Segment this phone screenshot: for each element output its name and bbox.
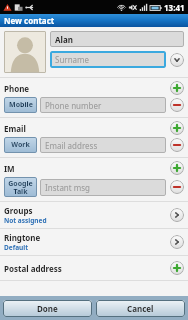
button[interactable]: Add contact photo	[4, 31, 46, 73]
staticText: Not assigned	[4, 216, 47, 225]
staticText: Mobile	[9, 100, 33, 110]
staticText: Surname	[55, 54, 90, 65]
staticText: Phone number	[45, 100, 102, 111]
staticText: Cancel	[127, 303, 154, 314]
button[interactable]: Add IM	[170, 161, 184, 175]
staticText: Instant msg	[45, 182, 91, 193]
button[interactable]: Groups	[170, 208, 184, 222]
button[interactable]: Add Email	[170, 121, 184, 135]
staticText: Alan	[55, 34, 73, 45]
button[interactable]: Ringtone	[0, 229, 188, 255]
button[interactable]: Done	[3, 300, 92, 317]
staticText: Ringtone	[4, 232, 41, 243]
staticText: Phone	[4, 83, 170, 94]
button[interactable]: Expand name fields	[170, 53, 184, 67]
button[interactable]: Remove IM	[170, 180, 184, 194]
button[interactable]: Remove Phone	[170, 98, 184, 112]
button[interactable]: Groups	[0, 202, 188, 228]
button[interactable]: Instant msg	[40, 179, 166, 196]
button[interactable]: Cancel	[96, 300, 185, 317]
staticText: Email address	[45, 140, 98, 151]
button[interactable]: Email address	[40, 137, 166, 153]
button[interactable]: Surname	[50, 51, 166, 68]
button[interactable]: Alan	[50, 31, 184, 47]
staticText: Default	[4, 243, 29, 252]
staticText: Done	[37, 303, 58, 314]
staticText: 13:41	[164, 2, 185, 13]
staticText: Work	[11, 140, 30, 150]
staticText: Email	[4, 123, 170, 134]
staticText: New contact	[4, 15, 55, 26]
button[interactable]: Remove Email	[170, 138, 184, 152]
button[interactable]: Work	[4, 137, 37, 153]
button[interactable]: Mobile	[4, 97, 37, 113]
staticText: Postal address	[4, 263, 170, 274]
button[interactable]: Ringtone	[170, 235, 184, 249]
button[interactable]: Google Talk	[4, 177, 37, 197]
button[interactable]: Add Postal address	[170, 261, 184, 275]
button[interactable]: Phone number	[40, 97, 166, 113]
staticText: IM	[4, 163, 170, 174]
button[interactable]: Add Phone	[170, 81, 184, 95]
staticText: Groups	[4, 205, 33, 216]
staticText: Google Talk	[8, 179, 33, 196]
